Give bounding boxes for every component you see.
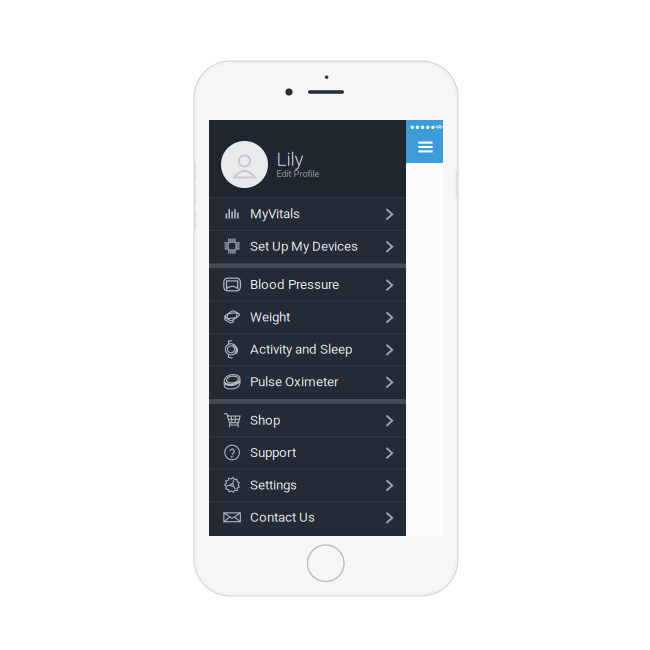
button[interactable]: Shop — [209, 404, 406, 436]
staticText: Blood Pressure — [250, 277, 339, 292]
staticText: Support — [250, 445, 296, 460]
button[interactable]: Support — [209, 436, 406, 469]
staticText: MyVitals — [250, 206, 300, 221]
staticText: Weight — [250, 309, 290, 325]
button[interactable]: Lily — [209, 120, 406, 197]
button[interactable]: Pulse Oximeter — [209, 365, 406, 398]
staticText: Pulse Oximeter — [250, 374, 339, 389]
button[interactable]: Set Up My Devices — [209, 230, 406, 262]
button[interactable]: MyVitals — [209, 197, 406, 230]
staticText: Shop — [250, 412, 280, 428]
staticText: Contact Us — [250, 509, 315, 525]
staticText: Lily — [276, 148, 303, 170]
staticText: Activity and Sleep — [250, 341, 352, 357]
staticText: Settings — [250, 477, 297, 493]
button[interactable]: Activity and Sleep — [209, 333, 406, 365]
button[interactable]: Menu — [413, 136, 437, 158]
button[interactable]: Blood Pressure — [209, 268, 406, 301]
button[interactable]: Settings — [209, 469, 406, 501]
staticText: Edit Profile — [276, 168, 319, 179]
staticText: Set Up My Devices — [250, 238, 358, 254]
button[interactable]: Weight — [209, 301, 406, 333]
button[interactable]: Contact Us — [209, 501, 406, 533]
